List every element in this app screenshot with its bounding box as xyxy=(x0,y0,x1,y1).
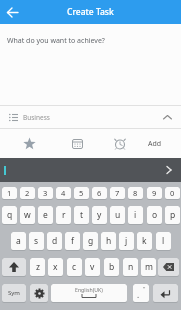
button[interactable]: c xyxy=(67,258,82,277)
staticText: 2 xyxy=(25,188,30,198)
button[interactable]: a xyxy=(11,232,26,251)
staticText: Business xyxy=(23,113,50,122)
button[interactable]: Add xyxy=(141,129,169,158)
button[interactable]: f xyxy=(65,232,80,251)
button[interactable]: r xyxy=(56,206,71,225)
staticText: Create Task xyxy=(67,6,114,18)
button[interactable]: k xyxy=(137,232,152,251)
button[interactable]: h xyxy=(101,232,116,251)
staticText: c xyxy=(72,261,77,273)
staticText: 7 xyxy=(115,188,120,198)
staticText: 5 xyxy=(79,188,84,198)
staticText: s xyxy=(34,235,39,247)
button[interactable]: e xyxy=(38,206,53,225)
staticText: e xyxy=(43,209,48,221)
button[interactable]: v xyxy=(85,258,100,277)
button[interactable]: 5 xyxy=(74,187,89,200)
staticText: 0 xyxy=(170,188,175,198)
button[interactable] xyxy=(30,284,48,303)
button[interactable]: m xyxy=(141,258,156,277)
staticText: u xyxy=(115,209,121,221)
staticText: x xyxy=(53,261,58,273)
button[interactable]: g xyxy=(83,232,98,251)
button[interactable]: 2 xyxy=(20,187,35,200)
staticText: 6 xyxy=(97,188,102,198)
button[interactable] xyxy=(15,129,43,158)
button[interactable]: 3 xyxy=(38,187,53,200)
staticText: " xyxy=(143,285,146,293)
button[interactable]: 6 xyxy=(92,187,107,200)
staticText: 9 xyxy=(152,188,157,198)
button[interactable]: o xyxy=(147,206,162,225)
button[interactable] xyxy=(63,129,91,158)
staticText: k xyxy=(142,235,147,247)
button[interactable]: 8 xyxy=(128,187,143,200)
button[interactable]: 7 xyxy=(110,187,125,200)
button[interactable]: English(UK) xyxy=(51,284,127,303)
button[interactable] xyxy=(106,129,134,158)
staticText: q xyxy=(7,209,13,221)
button[interactable]: b xyxy=(104,258,119,277)
staticText: o xyxy=(152,209,158,221)
button[interactable]: l xyxy=(156,232,171,251)
staticText: 8 xyxy=(133,188,138,198)
button[interactable]: z xyxy=(30,258,45,277)
staticText: y xyxy=(97,209,102,221)
button[interactable]: i xyxy=(128,206,143,225)
button[interactable]: t xyxy=(74,206,89,225)
staticText: f xyxy=(71,235,74,247)
staticText: n xyxy=(128,261,134,273)
button[interactable]: Business xyxy=(0,106,181,128)
button[interactable]: 1 xyxy=(2,187,17,200)
staticText: t xyxy=(80,209,84,221)
staticText: . xyxy=(137,289,140,300)
staticText: h xyxy=(106,235,112,247)
staticText: r xyxy=(62,209,66,221)
button[interactable] xyxy=(2,258,26,277)
staticText: v xyxy=(90,261,95,273)
button[interactable]: 4 xyxy=(56,187,71,200)
staticText: j xyxy=(125,235,128,247)
staticText: Add xyxy=(148,139,162,149)
staticText: m xyxy=(145,261,153,273)
button[interactable] xyxy=(0,0,24,24)
staticText: p xyxy=(170,209,176,221)
button[interactable]: j xyxy=(119,232,134,251)
button[interactable]: d xyxy=(47,232,62,251)
staticText: z xyxy=(36,261,40,273)
button[interactable]: x xyxy=(48,258,63,277)
staticText: i xyxy=(134,209,137,221)
button[interactable] xyxy=(158,258,179,277)
button[interactable]: q xyxy=(2,206,17,225)
staticText: d xyxy=(52,235,58,247)
button[interactable]: 9 xyxy=(147,187,162,200)
button[interactable]: y xyxy=(92,206,107,225)
button[interactable]: p xyxy=(165,206,180,225)
staticText: 4 xyxy=(61,188,66,198)
button[interactable]: Sym xyxy=(2,284,26,303)
button[interactable]: w xyxy=(20,206,35,225)
staticText: w xyxy=(24,209,31,221)
staticText: Sym xyxy=(8,289,20,297)
staticText: What do you want to achieve? xyxy=(7,36,105,46)
button[interactable]: " xyxy=(133,284,149,303)
staticText: l xyxy=(162,235,165,247)
button[interactable] xyxy=(157,158,181,182)
button[interactable]: s xyxy=(29,232,44,251)
button[interactable]: n xyxy=(123,258,138,277)
staticText: a xyxy=(16,235,21,247)
button[interactable] xyxy=(153,284,178,303)
staticText: 1 xyxy=(7,188,12,198)
button[interactable]: u xyxy=(110,206,125,225)
button[interactable]: 0 xyxy=(165,187,180,200)
staticText: g xyxy=(88,235,94,247)
staticText: b xyxy=(109,261,115,273)
staticText: 3 xyxy=(43,188,48,198)
staticText: English(UK) xyxy=(75,286,103,293)
